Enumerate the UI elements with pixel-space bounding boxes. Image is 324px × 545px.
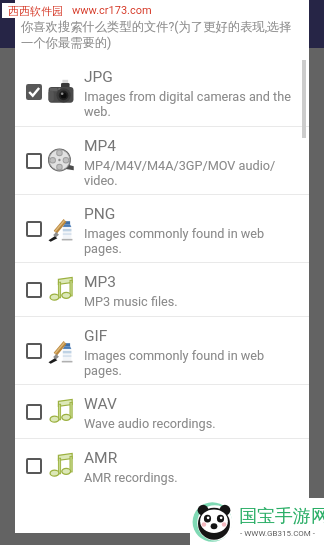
staticText: MP4/M4V/M4A/3GP/MOV audio/video. xyxy=(84,158,292,188)
button[interactable]: WAV xyxy=(15,385,309,438)
staticText: Wave audio recordings. xyxy=(84,416,216,431)
staticText: PNG xyxy=(84,205,116,223)
staticText: 你喜欢搜索什么类型的文件?(为了更好的表现,选择一个你最需要的) xyxy=(21,19,303,51)
button[interactable]: GIF xyxy=(15,317,309,384)
staticText: GIF xyxy=(84,327,108,345)
button[interactable]: MP4 xyxy=(15,127,309,194)
staticText: MP3 music files. xyxy=(84,294,178,309)
staticText: WAV xyxy=(84,395,117,413)
button[interactable]: MP3 xyxy=(15,263,309,316)
staticText: Images from digital cameras and the web. xyxy=(84,89,292,119)
staticText: 国宝手游网 xyxy=(239,505,324,528)
staticText: - WWW.GB315.COM - xyxy=(240,529,316,538)
staticText: AMR recordings. xyxy=(84,470,178,485)
staticText: www.cr173.com xyxy=(72,4,152,17)
button[interactable]: JPG xyxy=(15,58,309,126)
staticText: MP3 xyxy=(84,273,117,291)
staticText: Images commonly found in web pages. xyxy=(84,348,292,378)
button[interactable]: PNG xyxy=(15,195,309,262)
staticText: Images commonly found in web pages. xyxy=(84,226,292,256)
staticText: AMR xyxy=(84,449,118,467)
button[interactable]: AMR xyxy=(15,439,309,492)
staticText: JPG xyxy=(84,68,113,86)
staticText: 西西软件园 xyxy=(8,4,63,18)
staticText: MP4 xyxy=(84,137,117,155)
